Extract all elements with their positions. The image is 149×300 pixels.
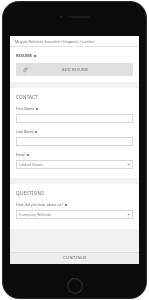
staticText: ADD RESUME [62,67,89,72]
staticText: Last Name [16,129,34,134]
button[interactable]: United States [16,160,133,169]
staticText: First Name [16,106,35,111]
staticText: Muggle Relations Specialist • Hogwarts •… [15,39,95,44]
staticText: Company Website [19,212,52,217]
button[interactable]: Company Website [16,210,133,219]
button[interactable]: CONTINUE [10,252,139,264]
staticText: QUESTIONS [16,190,44,196]
staticText: CONTACT [16,94,39,100]
button[interactable] [16,137,133,146]
staticText: United States [19,162,43,167]
staticText: RESUME [16,53,33,58]
button[interactable]: ADD RESUME [16,63,133,76]
staticText: Email [16,152,26,157]
button[interactable] [16,114,133,123]
staticText: How did you hear about us? [16,202,64,207]
staticText: CONTINUE [63,255,87,261]
